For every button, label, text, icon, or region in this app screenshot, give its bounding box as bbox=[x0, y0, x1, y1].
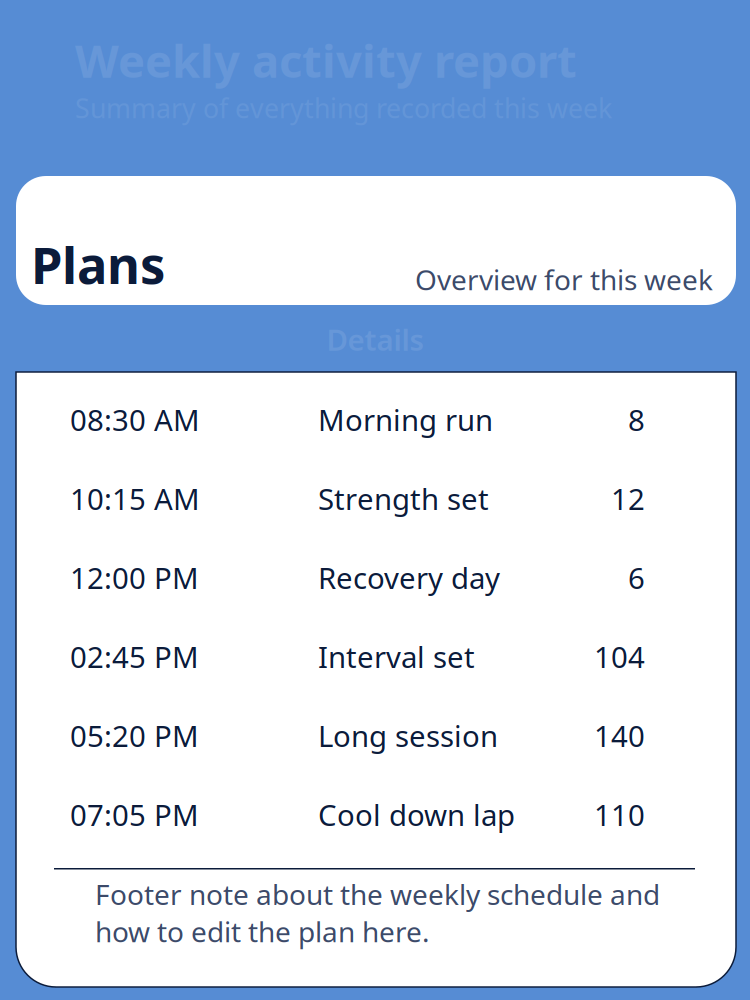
staticText: 08:30 AM bbox=[70, 400, 200, 439]
staticText: Cool down lap bbox=[318, 795, 515, 834]
staticText: Long session bbox=[318, 716, 498, 755]
staticText: 140 bbox=[594, 716, 645, 755]
staticText: 12:00 PM bbox=[70, 558, 199, 597]
staticText: Interval set bbox=[318, 637, 475, 676]
staticText: 02:45 PM bbox=[70, 637, 199, 676]
staticText: 10:15 AM bbox=[70, 479, 200, 518]
staticText: Strength set bbox=[318, 479, 489, 518]
staticText: 104 bbox=[594, 637, 645, 676]
staticText: 6 bbox=[628, 558, 645, 597]
staticText: 05:20 PM bbox=[70, 716, 199, 755]
staticText: Recovery day bbox=[318, 558, 500, 597]
staticText: Footer note about the weekly schedule an… bbox=[95, 875, 660, 950]
staticText: Morning run bbox=[318, 400, 493, 439]
staticText: Weekly activity report bbox=[75, 30, 577, 90]
staticText: 12 bbox=[611, 479, 645, 518]
staticText: Details bbox=[326, 320, 423, 359]
staticText: 07:05 PM bbox=[70, 795, 199, 834]
staticText: Overview for this week bbox=[415, 261, 713, 298]
staticText: 110 bbox=[594, 795, 645, 834]
staticText: Summary of everything recorded this week bbox=[75, 90, 612, 126]
staticText: 8 bbox=[628, 400, 645, 439]
staticText: Plans bbox=[31, 231, 165, 298]
